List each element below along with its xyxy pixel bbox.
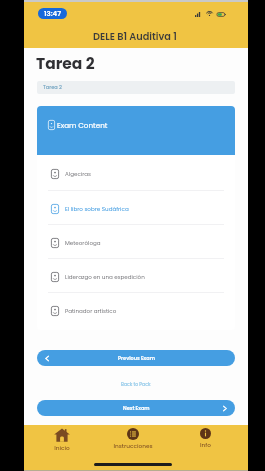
staticText: Exam Content — [57, 120, 108, 130]
button[interactable]: Next Exam — [37, 400, 235, 416]
button[interactable]: El libro sobre Sudáfrica — [37, 191, 235, 224]
button[interactable]: Back to Pack — [119, 379, 153, 389]
staticText: Algeciras — [65, 170, 91, 178]
button[interactable]: Exam Content — [37, 106, 235, 155]
staticText: Tarea 2 — [43, 84, 62, 91]
button[interactable]: Liderazgo en una expedición — [37, 259, 235, 292]
button[interactable]: Info — [169, 428, 241, 449]
staticText: Liderazgo en una expedición — [65, 273, 145, 281]
staticText: Previous Exam — [118, 355, 155, 362]
staticText: Info — [200, 441, 211, 449]
other: Next — [223, 406, 227, 411]
staticText: DELE B1 Auditiva 1 — [93, 30, 177, 44]
button[interactable]: Meteoróloga — [37, 225, 235, 258]
button[interactable]: Patinador artístico — [37, 293, 235, 326]
staticText: Instrucciones — [113, 442, 153, 450]
button[interactable]: Algeciras — [37, 155, 235, 190]
staticText: Tarea 2 — [36, 53, 95, 75]
staticText: 13:47 — [44, 9, 62, 19]
button[interactable]: Tarea 2 — [37, 81, 235, 94]
staticText: Inicio — [54, 444, 70, 452]
staticText: Meteoróloga — [65, 239, 101, 247]
other: Previous — [45, 356, 49, 361]
staticText: Patinador artístico — [65, 307, 117, 315]
button[interactable]: Previous Exam — [37, 350, 235, 366]
staticText: Next Exam — [123, 405, 150, 412]
button[interactable]: Inicio — [26, 428, 97, 452]
button[interactable]: Instrucciones — [97, 428, 169, 450]
staticText: El libro sobre Sudáfrica — [65, 205, 129, 213]
